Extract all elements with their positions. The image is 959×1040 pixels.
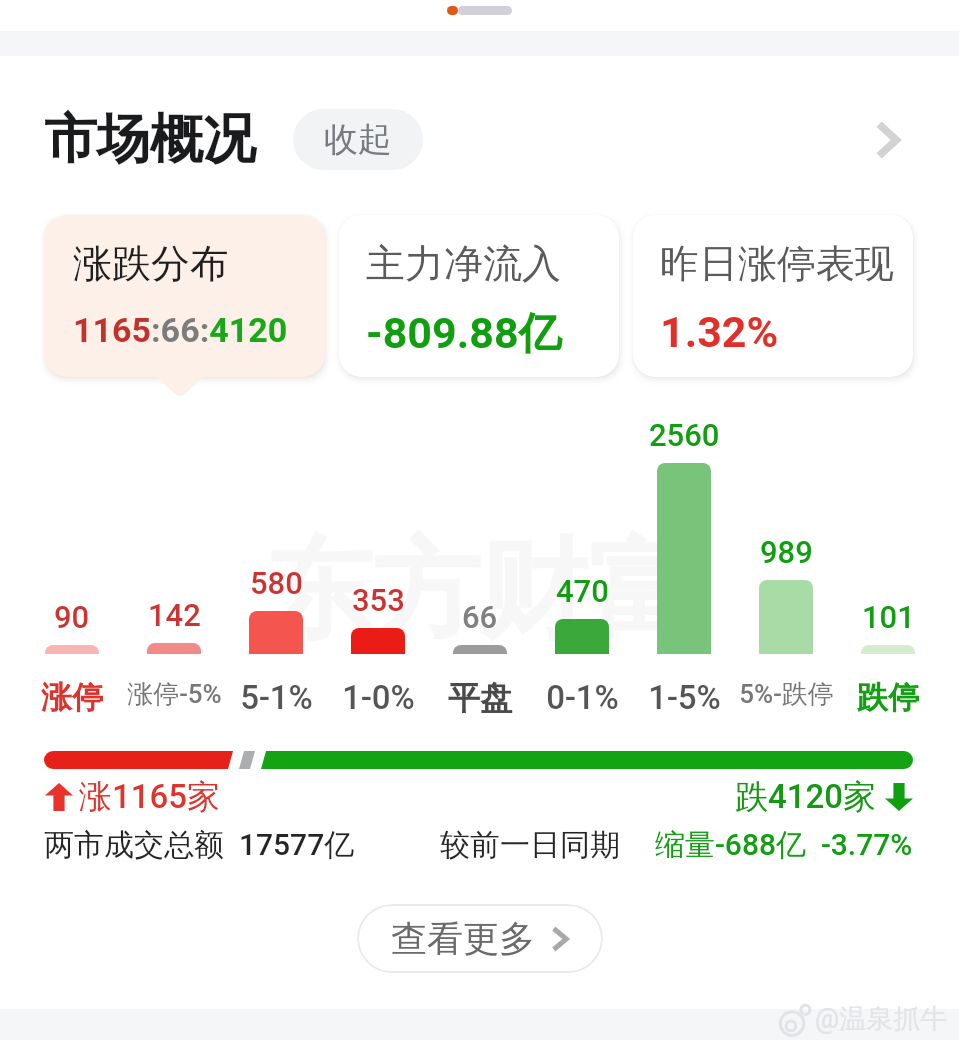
staticText: 580 (250, 565, 303, 601)
staticText: 470 (556, 573, 609, 609)
button[interactable]: 涨跌分布 (44, 215, 325, 377)
staticText: 两市成交总额 17577亿 (44, 826, 355, 864)
staticText: 353 (352, 582, 405, 618)
staticText: 0-1% (546, 678, 619, 717)
staticText: 缩量-688亿 -3.77% (655, 826, 913, 864)
staticText: 1165:66:4120 (73, 310, 288, 350)
button[interactable]: 昨日涨停表现 (633, 215, 913, 377)
staticText: 收起 (324, 118, 392, 161)
staticText: 涨停-5% (127, 678, 222, 711)
staticText: 平盘 (448, 678, 512, 718)
staticText: 5%-跌停 (739, 678, 834, 711)
staticText: 5-1% (240, 678, 313, 717)
button[interactable]: 查看更多 (357, 904, 603, 973)
staticText: 142 (148, 597, 201, 633)
staticText: 涨1165家 (79, 776, 221, 818)
staticText: 1.32% (660, 307, 779, 357)
staticText: 跌停 (857, 678, 919, 717)
staticText: 2560 (649, 417, 720, 453)
staticText: 66 (462, 599, 498, 635)
staticText: 查看更多 (391, 916, 535, 961)
button[interactable]: More (861, 113, 915, 167)
staticText: 1-5% (648, 678, 721, 717)
staticText: 东方财富 (264, 523, 696, 659)
staticText: 989 (760, 534, 813, 570)
staticText: -809.88亿 (366, 307, 562, 361)
staticText: 101 (862, 599, 915, 635)
staticText: 涨跌分布 (73, 239, 229, 288)
staticText: 昨日涨停表现 (660, 239, 894, 288)
staticText: 90 (54, 599, 90, 635)
staticText: 跌4120家 (735, 776, 877, 818)
button[interactable]: 主力净流入 (339, 215, 619, 377)
staticText: 市场概况 (44, 106, 256, 173)
staticText: @温泉抓牛 (815, 1002, 948, 1036)
staticText: 较前一日同期 (440, 826, 620, 864)
button[interactable]: 收起 (293, 109, 423, 170)
staticText: 主力净流入 (366, 239, 561, 288)
staticText: 涨停 (41, 678, 103, 717)
staticText: 1-0% (342, 678, 415, 717)
